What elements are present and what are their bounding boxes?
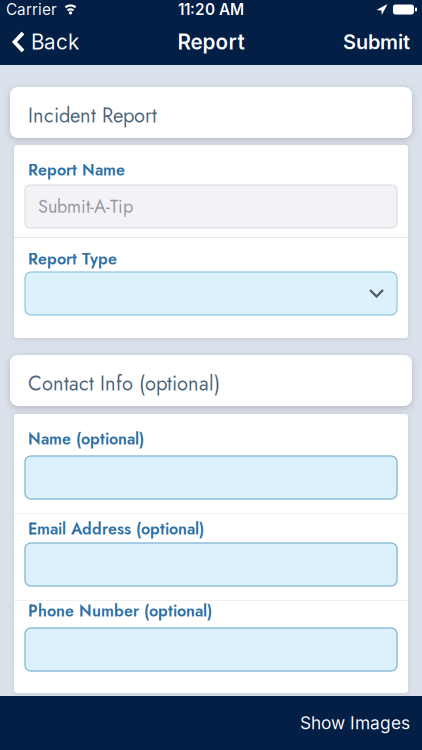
staticText: Name (optional)	[28, 427, 144, 450]
staticText: Submit-A-Tip	[38, 193, 133, 219]
button[interactable]: Report Name	[14, 185, 408, 228]
button[interactable]: Submit	[343, 30, 422, 54]
staticText: Show Images	[300, 712, 410, 733]
button[interactable]: Show Images	[288, 696, 422, 750]
staticText: Report Name	[28, 158, 125, 181]
staticText: Incident Report	[28, 101, 157, 130]
button[interactable]: Back	[0, 29, 79, 54]
button[interactable]: Phone Number	[14, 628, 408, 671]
staticText: Email Address (optional)	[28, 517, 204, 540]
staticText: Contact Info (optional)	[28, 369, 220, 398]
button[interactable]: Report Type	[14, 272, 408, 315]
staticText: Submit	[343, 30, 410, 54]
staticText: Report	[177, 29, 244, 54]
staticText: Phone Number (optional)	[28, 599, 212, 622]
button[interactable]: Name	[14, 456, 408, 499]
staticText: Back	[31, 29, 79, 54]
staticText: Report Type	[28, 247, 117, 270]
button[interactable]: Email Address	[14, 543, 408, 586]
staticText: 11:20 AM	[178, 0, 244, 19]
staticText: Carrier	[6, 0, 57, 19]
